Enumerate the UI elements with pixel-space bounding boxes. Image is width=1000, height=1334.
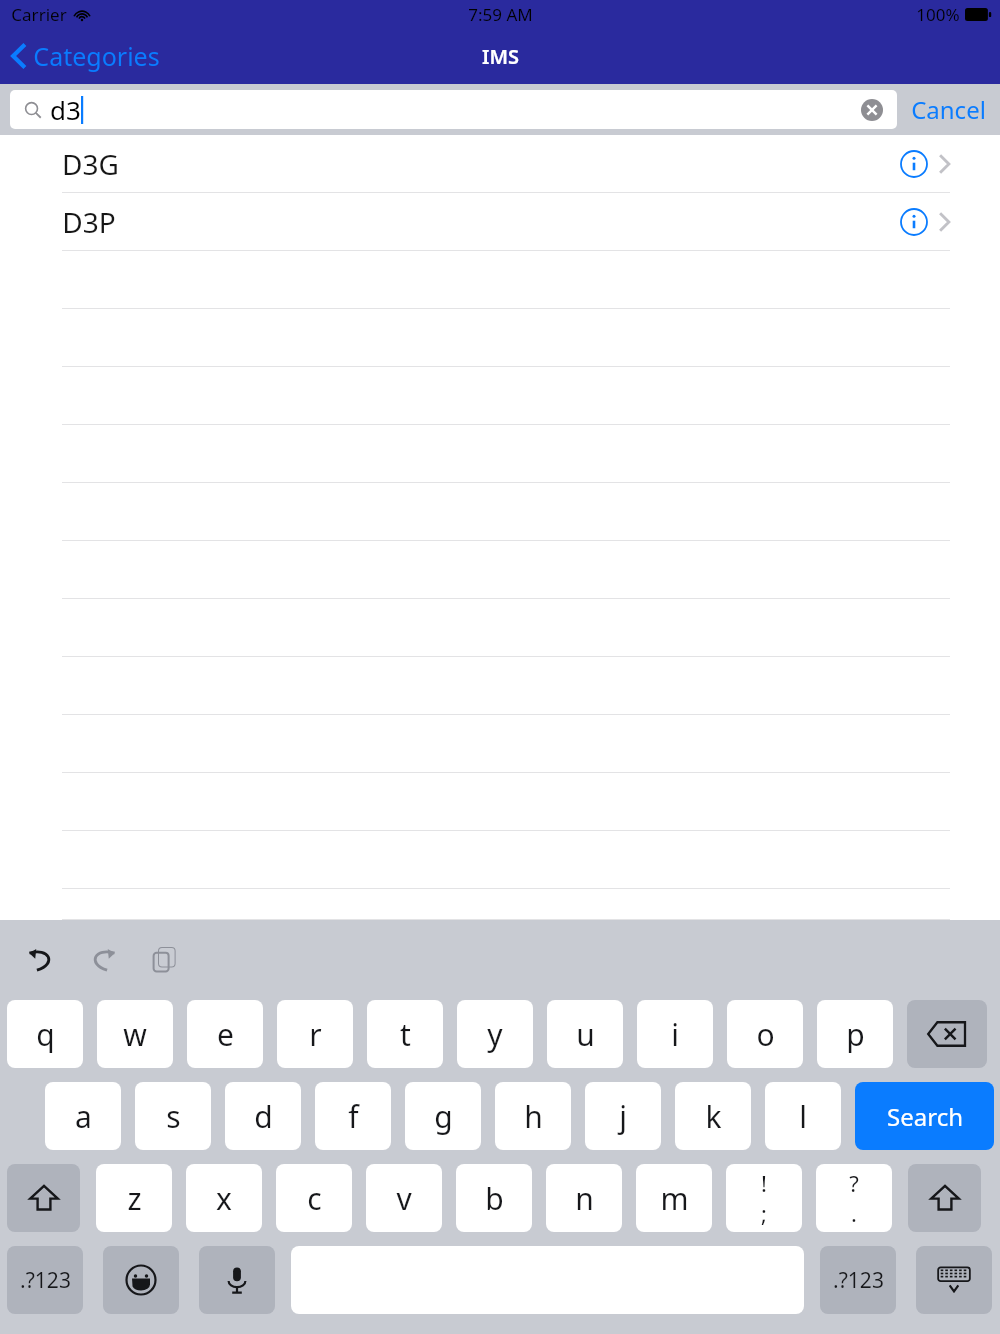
staticText: ? <box>849 1168 859 1198</box>
button[interactable]: Backspace <box>907 1000 987 1068</box>
button[interactable]: h <box>495 1082 571 1150</box>
staticText: Cancel <box>911 93 986 126</box>
button[interactable]: Emoji <box>103 1246 179 1314</box>
button[interactable]: Paste <box>138 933 192 987</box>
staticText: IMS <box>482 43 519 70</box>
button[interactable]: Search <box>855 1082 994 1150</box>
button[interactable]: e <box>187 1000 263 1068</box>
button[interactable]: Categories <box>0 28 172 84</box>
button[interactable]: Numbers <box>820 1246 896 1314</box>
button[interactable]: w <box>97 1000 173 1068</box>
button[interactable]: Clear text <box>859 97 885 123</box>
button[interactable]: Voice input <box>199 1246 275 1314</box>
staticText: e <box>217 1014 234 1055</box>
staticText: z <box>127 1178 142 1219</box>
staticText: r <box>309 1014 322 1055</box>
staticText: ! <box>761 1168 767 1198</box>
button[interactable]: Undo <box>14 933 68 987</box>
button[interactable]: b <box>456 1164 532 1232</box>
staticText: Categories <box>33 39 160 73</box>
staticText: p <box>846 1014 865 1055</box>
staticText: n <box>575 1178 594 1219</box>
button[interactable]: u <box>547 1000 623 1068</box>
button[interactable]: o <box>727 1000 803 1068</box>
button[interactable]: Shift <box>7 1164 80 1232</box>
staticText: 7:59 AM <box>468 3 533 26</box>
staticText: ; <box>761 1198 767 1228</box>
button[interactable]: s <box>135 1082 211 1150</box>
staticText: q <box>36 1014 55 1055</box>
button[interactable]: ! <box>726 1164 802 1232</box>
button[interactable]: q <box>7 1000 83 1068</box>
staticText: Search <box>887 1100 963 1133</box>
button[interactable]: d3 <box>10 90 897 129</box>
staticText: d <box>254 1096 273 1137</box>
button[interactable]: n <box>546 1164 622 1232</box>
button[interactable]: D3G <box>0 135 1000 193</box>
button[interactable]: f <box>315 1082 391 1150</box>
staticText: 100% <box>916 3 960 26</box>
staticText: d3 <box>50 92 81 127</box>
button[interactable]: Redo <box>76 933 130 987</box>
staticText: b <box>485 1178 504 1219</box>
staticText: .?123 <box>833 1266 884 1295</box>
button[interactable]: v <box>366 1164 442 1232</box>
button[interactable]: D3P <box>0 193 1000 251</box>
button[interactable]: r <box>277 1000 353 1068</box>
button[interactable]: z <box>96 1164 172 1232</box>
staticText: s <box>166 1096 181 1137</box>
staticText: D3P <box>62 203 116 241</box>
button[interactable]: More info <box>897 147 931 181</box>
button[interactable]: y <box>457 1000 533 1068</box>
staticText: .?123 <box>20 1266 71 1295</box>
button[interactable]: ? <box>816 1164 892 1232</box>
staticText: a <box>75 1096 92 1137</box>
staticText: D3G <box>62 145 119 183</box>
staticText: c <box>307 1178 322 1219</box>
button[interactable]: t <box>367 1000 443 1068</box>
staticText: i <box>671 1014 679 1055</box>
staticText: m <box>660 1178 689 1219</box>
staticText: j <box>619 1096 627 1137</box>
button[interactable]: p <box>817 1000 893 1068</box>
button[interactable]: Cancel <box>897 84 1000 135</box>
button[interactable]: Hide keyboard <box>916 1246 992 1314</box>
staticText: Carrier <box>11 3 67 26</box>
button[interactable]: d <box>225 1082 301 1150</box>
staticText: k <box>705 1096 722 1137</box>
staticText: u <box>576 1014 595 1055</box>
staticText: h <box>524 1096 543 1137</box>
staticText: x <box>216 1178 232 1219</box>
staticText: w <box>123 1014 147 1055</box>
button[interactable]: g <box>405 1082 481 1150</box>
button[interactable]: l <box>765 1082 841 1150</box>
staticText: t <box>400 1014 411 1055</box>
staticText: v <box>396 1178 412 1219</box>
button[interactable]: m <box>636 1164 712 1232</box>
staticText: l <box>799 1096 807 1137</box>
button[interactable]: Shift <box>908 1164 981 1232</box>
staticText: o <box>756 1014 775 1055</box>
button[interactable]: More info <box>897 205 931 239</box>
staticText: g <box>434 1096 453 1137</box>
staticText: y <box>487 1014 503 1055</box>
button[interactable]: j <box>585 1082 661 1150</box>
button[interactable]: k <box>675 1082 751 1150</box>
button[interactable]: i <box>637 1000 713 1068</box>
staticText: . <box>851 1198 857 1228</box>
button[interactable]: Numbers <box>7 1246 83 1314</box>
button[interactable]: c <box>276 1164 352 1232</box>
staticText: f <box>348 1096 359 1137</box>
button[interactable]: a <box>45 1082 121 1150</box>
button[interactable]: x <box>186 1164 262 1232</box>
